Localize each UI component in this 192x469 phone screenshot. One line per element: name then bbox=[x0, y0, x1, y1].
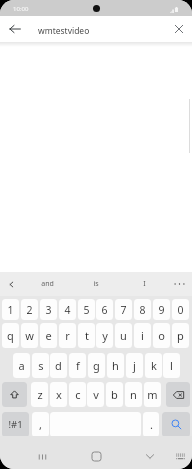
button[interactable]: h bbox=[107, 353, 124, 378]
button[interactable]: 9 bbox=[153, 299, 170, 320]
staticText: 7 bbox=[120, 303, 127, 317]
button[interactable]: 8 bbox=[134, 299, 151, 320]
staticText: I bbox=[143, 279, 146, 289]
button[interactable]: 4 bbox=[59, 299, 76, 320]
button[interactable]: y bbox=[96, 323, 113, 348]
staticText: wmtestvideo bbox=[38, 25, 90, 37]
staticText: 2 bbox=[26, 303, 33, 317]
button[interactable] bbox=[166, 382, 190, 407]
button[interactable]: n bbox=[125, 382, 142, 407]
staticText: y bbox=[102, 328, 108, 343]
button[interactable]: m bbox=[144, 382, 161, 407]
button[interactable]: z bbox=[31, 382, 48, 407]
button[interactable]: 7 bbox=[115, 299, 132, 320]
button[interactable]: I bbox=[123, 273, 165, 295]
button[interactable]: 3 bbox=[40, 299, 57, 320]
staticText: b bbox=[111, 387, 118, 402]
staticText: p bbox=[177, 328, 184, 343]
staticText: . bbox=[150, 417, 153, 432]
button[interactable]: w bbox=[21, 323, 38, 348]
button[interactable]: d bbox=[50, 353, 67, 378]
staticText: z bbox=[37, 387, 43, 402]
staticText: f bbox=[76, 358, 80, 373]
button[interactable]: Previous suggestions bbox=[3, 273, 19, 295]
button[interactable]: 6 bbox=[96, 299, 113, 320]
button[interactable]: o bbox=[153, 323, 170, 348]
staticText: q bbox=[7, 328, 14, 343]
button[interactable]: k bbox=[145, 353, 162, 378]
staticText: 6 bbox=[101, 303, 108, 317]
staticText: 9 bbox=[158, 303, 165, 317]
staticText: and bbox=[41, 279, 54, 289]
button[interactable]: f bbox=[69, 353, 86, 378]
button[interactable]: More suggestions bbox=[168, 273, 190, 295]
button[interactable]: , bbox=[32, 412, 49, 437]
button[interactable]: a bbox=[13, 353, 30, 378]
button[interactable]: . bbox=[143, 412, 159, 437]
button[interactable]: p bbox=[172, 323, 189, 348]
other: Search bbox=[171, 419, 182, 430]
button[interactable]: c bbox=[69, 382, 86, 407]
staticText: m bbox=[147, 387, 158, 402]
staticText: x bbox=[56, 387, 62, 402]
button[interactable]: is bbox=[75, 273, 117, 295]
button[interactable]: l bbox=[163, 353, 180, 378]
button[interactable]: Home bbox=[80, 444, 113, 469]
staticText: r bbox=[65, 328, 70, 343]
staticText: 8 bbox=[139, 303, 146, 317]
button[interactable]: Back bbox=[3, 17, 27, 41]
staticText: !#1 bbox=[8, 418, 23, 431]
button[interactable]: q bbox=[2, 323, 19, 348]
staticText: t bbox=[85, 328, 89, 343]
button[interactable]: e bbox=[40, 323, 57, 348]
button[interactable]: s bbox=[32, 353, 49, 378]
staticText: u bbox=[120, 328, 127, 343]
staticText: g bbox=[93, 358, 100, 373]
staticText: k bbox=[151, 358, 157, 373]
button[interactable]: Hide keyboard bbox=[133, 444, 166, 469]
staticText: a bbox=[18, 358, 25, 373]
staticText: is bbox=[93, 279, 99, 289]
button[interactable]: v bbox=[87, 382, 104, 407]
staticText: j bbox=[133, 358, 136, 373]
staticText: h bbox=[112, 358, 119, 373]
button[interactable]: g bbox=[88, 353, 105, 378]
staticText: v bbox=[93, 387, 99, 402]
button[interactable]: b bbox=[106, 382, 123, 407]
button[interactable]: and bbox=[26, 273, 68, 295]
staticText: l bbox=[170, 358, 173, 373]
staticText: d bbox=[55, 358, 62, 373]
staticText: o bbox=[158, 328, 165, 343]
button[interactable]: Recent apps bbox=[26, 444, 59, 469]
button[interactable] bbox=[2, 382, 27, 407]
button[interactable]: 0 bbox=[172, 299, 189, 320]
button[interactable] bbox=[50, 412, 141, 437]
button[interactable]: x bbox=[50, 382, 67, 407]
staticText: s bbox=[38, 358, 44, 373]
staticText: i bbox=[141, 328, 144, 343]
button[interactable]: Clear search bbox=[167, 17, 191, 41]
staticText: , bbox=[39, 417, 42, 432]
staticText: 10:00 bbox=[13, 5, 29, 13]
staticText: 0 bbox=[177, 303, 184, 317]
button[interactable]: u bbox=[115, 323, 132, 348]
staticText: 3 bbox=[45, 303, 52, 317]
button[interactable]: r bbox=[59, 323, 76, 348]
button[interactable]: j bbox=[126, 353, 143, 378]
staticText: c bbox=[75, 387, 81, 402]
button[interactable]: 2 bbox=[21, 299, 38, 320]
button[interactable]: 1 bbox=[2, 299, 19, 320]
button[interactable]: !#1 bbox=[2, 412, 29, 437]
staticText: e bbox=[45, 328, 52, 343]
button[interactable]: Search bbox=[162, 412, 190, 437]
button[interactable]: Change keyboard bbox=[164, 444, 192, 469]
button[interactable]: 5 bbox=[78, 299, 95, 320]
button[interactable]: i bbox=[134, 323, 151, 348]
staticText: 1 bbox=[7, 303, 14, 317]
staticText: n bbox=[130, 387, 137, 402]
staticText: 4 bbox=[64, 303, 71, 317]
staticText: 5 bbox=[83, 303, 90, 317]
staticText: w bbox=[25, 328, 34, 343]
button[interactable]: t bbox=[78, 323, 95, 348]
